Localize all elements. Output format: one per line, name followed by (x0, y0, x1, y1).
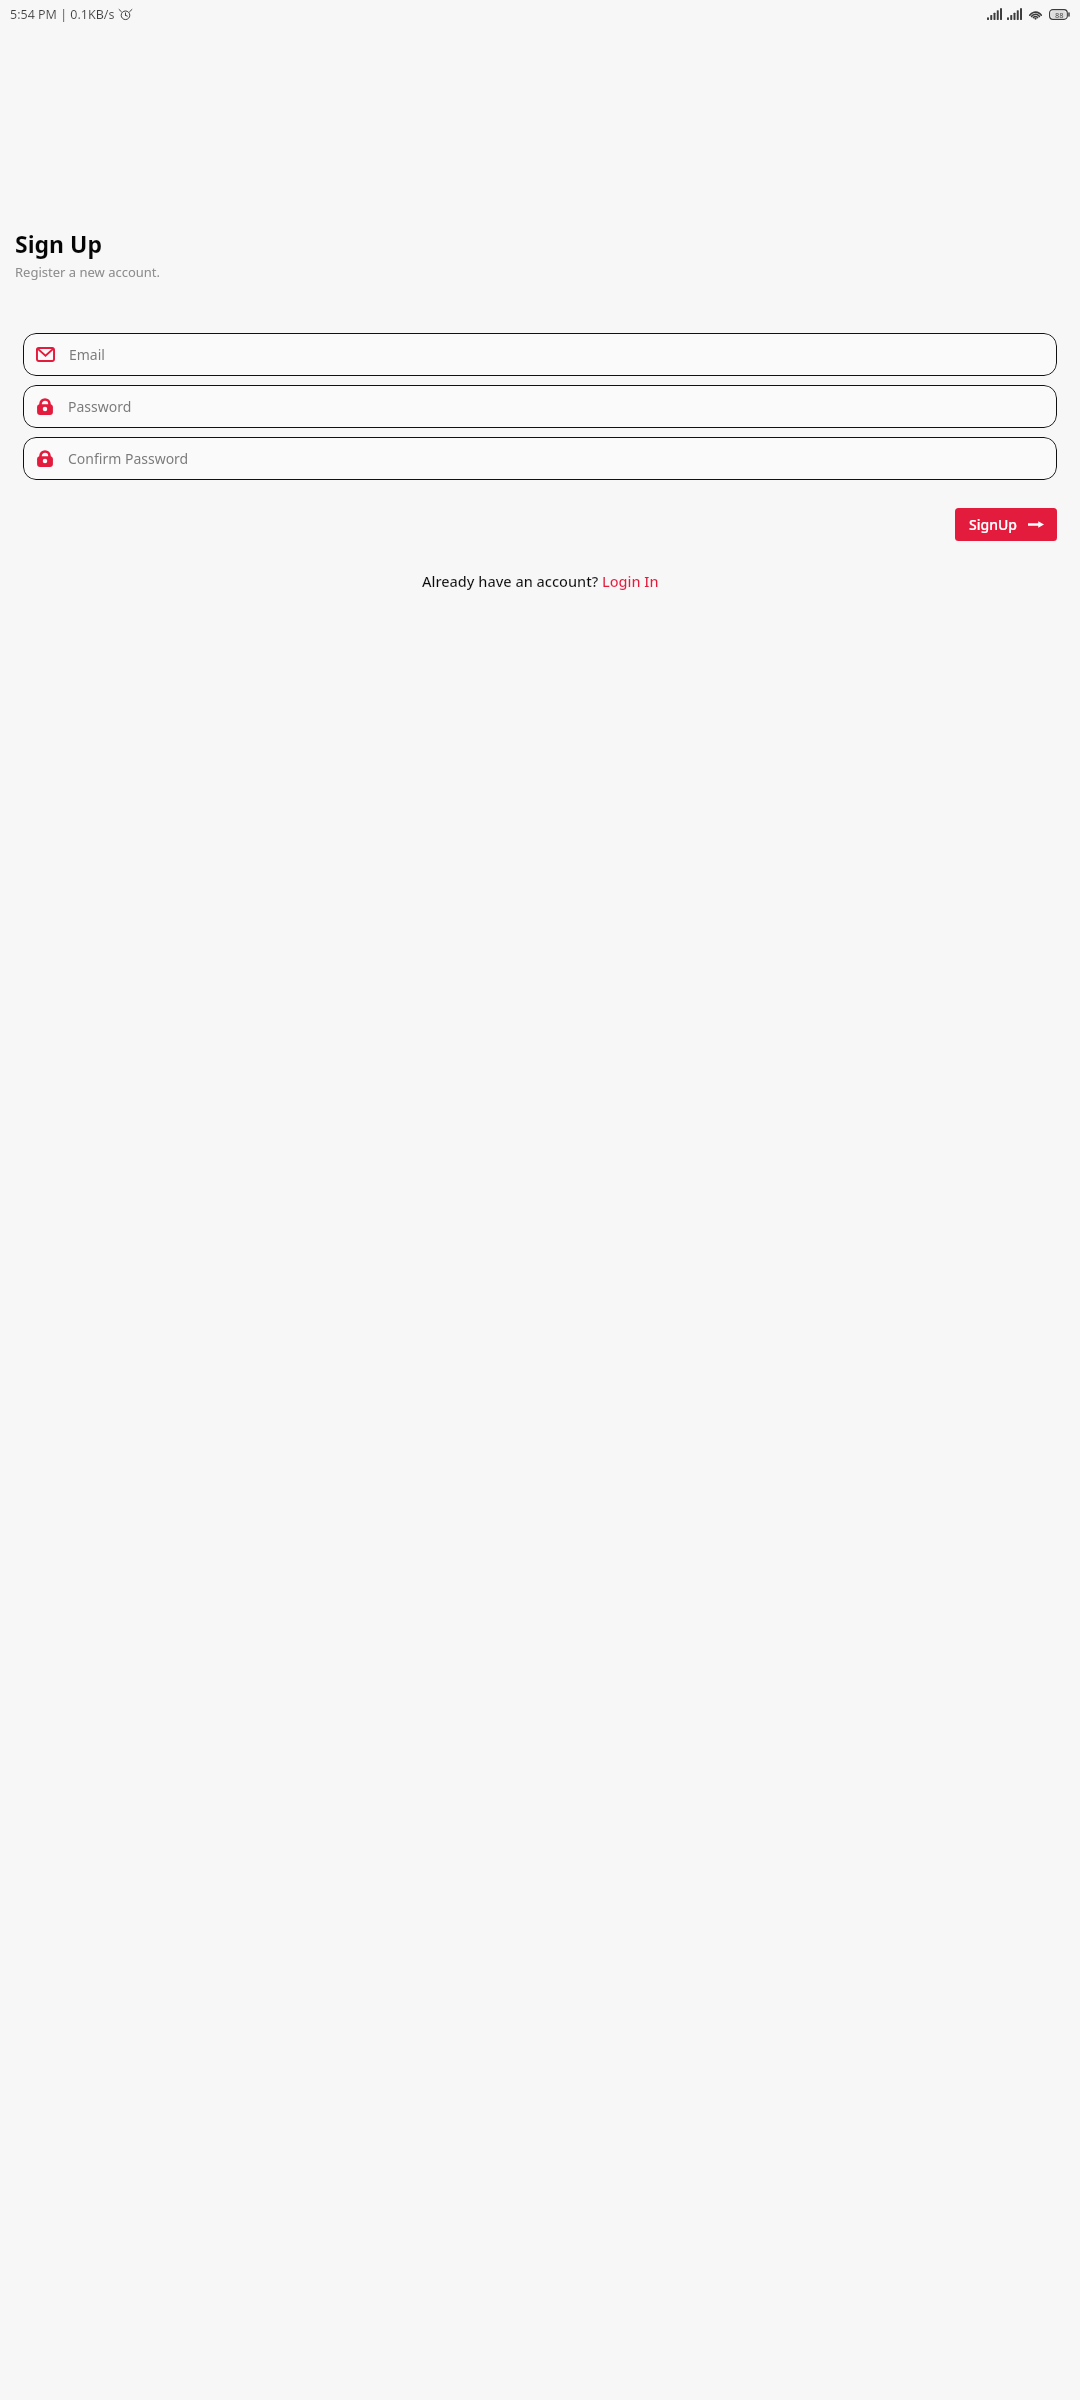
button[interactable]: SignUp (955, 508, 1057, 541)
staticText: SignUp (969, 515, 1017, 534)
staticText: Email (69, 345, 105, 364)
staticText: Password (68, 397, 132, 416)
staticText: Already have an account? Login In (422, 571, 659, 591)
button[interactable]: Email (23, 333, 1057, 376)
staticText: Sign Up (15, 228, 102, 259)
staticText: 88 (1055, 10, 1064, 20)
staticText: Register a new account. (15, 263, 161, 281)
button[interactable]: Confirm Password (23, 437, 1057, 480)
button[interactable]: Already have an account? Login In (416, 567, 665, 595)
staticText: 5:54 PM | 0.1KB/s (10, 6, 115, 23)
staticText: Confirm Password (68, 449, 189, 468)
button[interactable]: Password (23, 385, 1057, 428)
